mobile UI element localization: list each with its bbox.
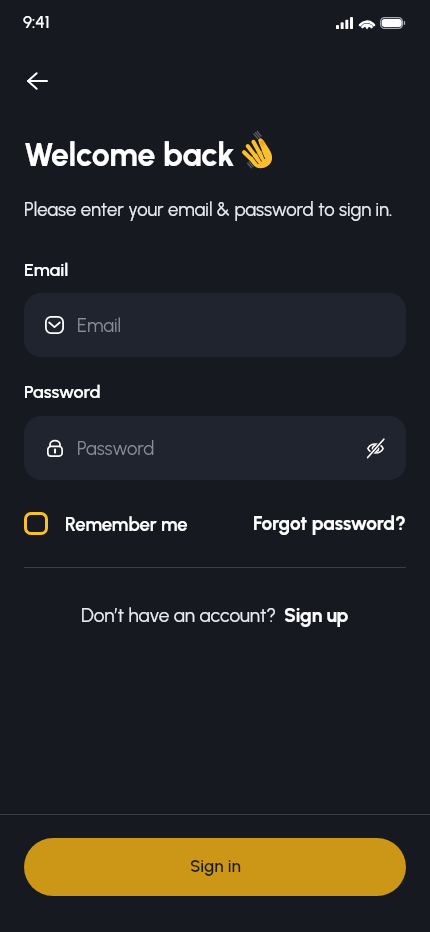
staticText: Please enter your email & password to si… <box>24 198 393 220</box>
staticText: Password <box>24 381 101 403</box>
staticText: Email <box>24 259 69 281</box>
button[interactable]: Show password <box>356 429 394 467</box>
staticText: Welcome back <box>24 136 235 174</box>
staticText: Password <box>77 437 155 459</box>
staticText: Email <box>77 314 122 336</box>
button[interactable]: Email <box>24 293 406 357</box>
button[interactable]: Sign in <box>24 838 406 896</box>
staticText: Don’t have an account? <box>81 604 277 627</box>
button[interactable]: Forgot password? <box>253 512 406 535</box>
staticText: Remember me <box>65 513 188 535</box>
staticText: Sign in <box>190 856 241 876</box>
button[interactable]: Remember me <box>24 512 188 535</box>
button[interactable]: Back <box>15 59 59 103</box>
button[interactable]: Sign up <box>284 604 349 627</box>
button[interactable]: Password <box>24 416 406 480</box>
staticText: 9:41 <box>23 12 50 32</box>
